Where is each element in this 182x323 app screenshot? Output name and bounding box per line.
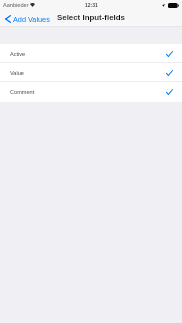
staticText: 12:31 [85, 2, 98, 8]
other: Battery full [168, 3, 179, 8]
staticText: Select Input-fields [57, 13, 125, 22]
staticText: Value [10, 70, 24, 76]
other: Wi-Fi signal [30, 3, 35, 7]
staticText: Active [10, 51, 26, 57]
staticText: Aanbieder [3, 2, 29, 8]
other: Location services active [162, 4, 165, 7]
button[interactable]: Comment [0, 82, 182, 101]
button[interactable]: Active [0, 44, 182, 63]
button[interactable]: Value [0, 63, 182, 82]
staticText: Add Values [13, 15, 50, 23]
button[interactable]: Add Values [0, 12, 52, 25]
staticText: Comment [10, 89, 35, 95]
